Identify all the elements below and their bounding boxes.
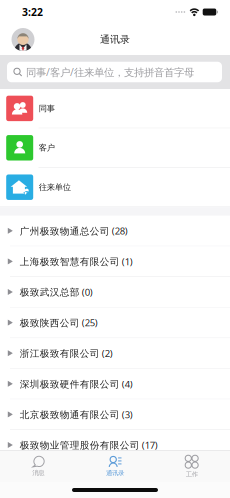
button[interactable]: 北京极致物通有限公司 (3) <box>0 399 230 430</box>
button[interactable]: 往来单位 <box>0 168 230 207</box>
staticText: 通讯录 <box>106 469 124 477</box>
staticText: 消息 <box>32 469 44 477</box>
staticText: 极致陕西公司 (25) <box>20 316 98 329</box>
staticText: 上海极致智慧有限公司 (1) <box>20 255 133 268</box>
button[interactable]: 同事 <box>0 89 230 128</box>
staticText: 深圳极致硬件有限公司 (4) <box>20 377 133 390</box>
button[interactable]: 消息 <box>0 451 77 482</box>
staticText: 工作 <box>186 470 198 478</box>
button[interactable]: 极致物业管理股份有限公司 (17) <box>0 430 230 461</box>
button[interactable]: 广州极致物通总公司 (28) <box>0 216 230 246</box>
button[interactable]: 极致陕西公司 (25) <box>0 308 230 338</box>
staticText: 广州极致物通总公司 (28) <box>20 224 128 237</box>
button[interactable]: 工作 <box>153 451 230 482</box>
staticText: 3:22 <box>22 5 43 19</box>
staticText: 极致物业管理股份有限公司 (17) <box>20 438 158 452</box>
staticText: 北京极致物通有限公司 (3) <box>20 408 133 421</box>
button[interactable]: Search <box>7 62 222 82</box>
staticText: 同事/客户/往来单位，支持拼音首字母 <box>26 65 194 79</box>
staticText: 通讯录 <box>100 33 130 46</box>
button[interactable]: 上海极致智慧有限公司 (1) <box>0 246 230 277</box>
staticText: 客户 <box>39 143 55 153</box>
button[interactable]: 通讯录 <box>77 451 153 482</box>
button[interactable]: 浙江极致有限公司 (2) <box>0 338 230 369</box>
staticText: 往来单位 <box>39 182 71 192</box>
staticText: 极致武汉总部 (0) <box>20 285 93 299</box>
button[interactable]: 深圳极致硬件有限公司 (4) <box>0 369 230 399</box>
button[interactable]: 客户 <box>0 128 230 168</box>
staticText: 同事 <box>39 103 55 114</box>
button[interactable]: 极致武汉总部 (0) <box>0 277 230 308</box>
staticText: 浙江极致有限公司 (2) <box>20 347 113 360</box>
button[interactable]: Profile <box>8 24 38 54</box>
